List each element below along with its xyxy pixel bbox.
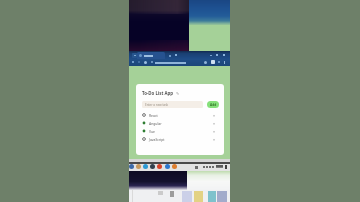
- staticText: ×: [213, 129, 216, 133]
- staticText: Angular: [149, 121, 162, 126]
- staticText: To-Do List App: [142, 90, 174, 96]
- button[interactable]: Taskbar app: [150, 164, 155, 169]
- button[interactable]: Angular: [142, 119, 219, 127]
- button[interactable]: Bookmark: [204, 61, 207, 64]
- staticText: ×: [213, 137, 216, 141]
- staticText: ×: [213, 113, 216, 117]
- button[interactable]: Delete React: [212, 113, 216, 117]
- button[interactable]: Taskbar app: [129, 164, 134, 169]
- staticText: JavaScript: [149, 137, 165, 142]
- button[interactable]: Extensions: [211, 60, 215, 64]
- button[interactable]: Taskbar app: [143, 164, 148, 169]
- button[interactable]: Tab search: [132, 53, 137, 58]
- button[interactable]: Taskbar app: [172, 164, 177, 169]
- button[interactable]: Delete Vue: [212, 129, 216, 133]
- button[interactable]: JavaScript: [142, 135, 219, 143]
- button[interactable]: Enter a new task: [142, 101, 203, 108]
- staticText: Vue: [149, 129, 156, 134]
- button[interactable]: Delete Angular: [212, 121, 216, 125]
- staticText: React: [149, 113, 158, 118]
- button[interactable]: Taskbar app: [136, 164, 141, 169]
- button[interactable]: Add: [207, 101, 219, 108]
- button[interactable]: Vue: [142, 127, 219, 135]
- button[interactable]: React: [142, 111, 219, 119]
- button[interactable]: Taskbar app: [165, 164, 170, 169]
- button[interactable]: [137, 52, 165, 59]
- staticText: ✎: [176, 91, 180, 96]
- staticText: Add: [210, 103, 217, 107]
- button[interactable]: Delete JavaScript: [212, 137, 216, 141]
- staticText: ×: [213, 121, 216, 125]
- button[interactable]: Taskbar app: [157, 164, 162, 169]
- staticText: Enter a new task: [145, 103, 169, 107]
- button[interactable]: Refresh: [144, 61, 147, 64]
